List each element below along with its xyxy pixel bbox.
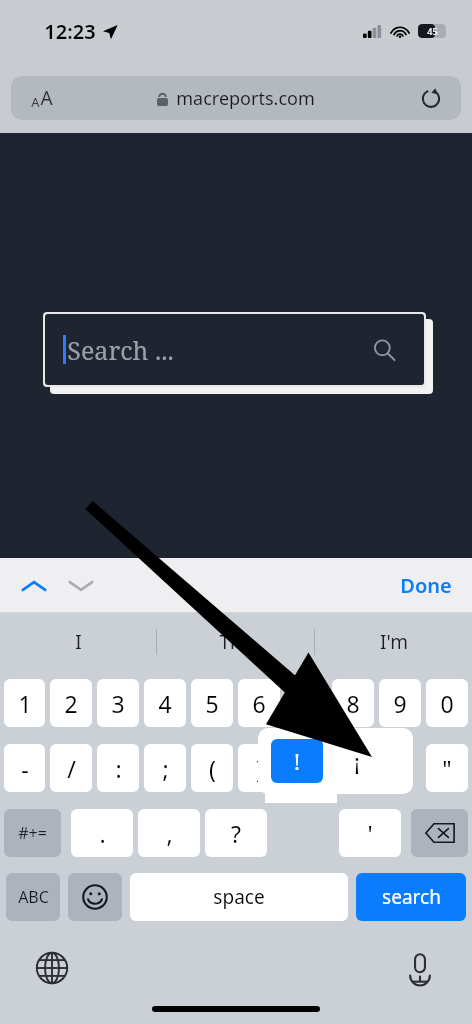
staticText: macreports.com — [176, 86, 315, 111]
staticText: ' — [367, 818, 373, 849]
button[interactable]: - — [4, 744, 45, 792]
button[interactable]: ( — [191, 744, 233, 792]
button[interactable]: ? — [205, 809, 267, 857]
button[interactable]: 6 — [238, 679, 280, 727]
button[interactable]: #+= — [4, 809, 61, 857]
button[interactable]: Delete — [411, 809, 468, 857]
button[interactable]: Done — [394, 566, 458, 605]
button[interactable]: ABC — [6, 873, 60, 921]
button[interactable]: Text size — [11, 76, 461, 120]
staticText: ! — [294, 746, 300, 776]
button[interactable]: The — [157, 613, 314, 671]
button[interactable]: 5 — [191, 679, 233, 727]
button[interactable]: Dictation — [401, 949, 439, 987]
staticText: - — [21, 753, 29, 784]
staticText: I — [75, 629, 82, 655]
staticText: 5 — [205, 688, 219, 719]
button[interactable]: ) — [238, 744, 280, 792]
staticText: 0 — [440, 688, 454, 719]
button[interactable]: Change keyboard language — [33, 949, 71, 987]
staticText: 8 — [346, 688, 360, 719]
button[interactable]: Reload — [419, 86, 443, 110]
button[interactable]: 0 — [426, 679, 468, 727]
staticText: " — [442, 753, 452, 784]
button[interactable]: ¡ — [331, 739, 383, 783]
staticText: 12:23 — [44, 18, 96, 45]
staticText: ; — [162, 753, 169, 784]
staticText: ABC — [18, 886, 49, 908]
button[interactable]: 1 — [4, 679, 45, 727]
staticText: ? — [231, 818, 241, 849]
button[interactable]: ; — [144, 744, 186, 792]
button[interactable]: Emoji — [68, 873, 122, 921]
button[interactable]: search — [356, 873, 466, 921]
staticText: A — [31, 93, 40, 111]
button[interactable]: I'm — [315, 613, 472, 671]
staticText: The — [219, 629, 253, 655]
staticText: . — [99, 818, 106, 849]
button[interactable]: / — [50, 744, 92, 792]
staticText: 6 — [252, 688, 266, 719]
staticText: / — [67, 753, 76, 784]
staticText: Done — [400, 572, 452, 599]
button[interactable]: ! — [271, 739, 323, 783]
staticText: : — [115, 753, 122, 784]
staticText: 4 — [158, 688, 172, 719]
staticText: , — [166, 818, 173, 849]
staticText: 9 — [393, 688, 407, 719]
button[interactable]: " — [426, 744, 468, 792]
button[interactable]: Search ... — [45, 314, 424, 385]
button[interactable]: : — [97, 744, 139, 792]
button[interactable]: 3 — [97, 679, 139, 727]
button[interactable]: Text size — [31, 85, 53, 111]
button[interactable]: 8 — [332, 679, 374, 727]
button[interactable]: Next field — [63, 568, 99, 604]
button[interactable]: 2 — [50, 679, 92, 727]
staticText: ( — [209, 753, 216, 784]
button[interactable]: space — [130, 873, 348, 921]
staticText: 2 — [64, 688, 78, 719]
button[interactable]: ' — [339, 809, 401, 857]
staticText: 1 — [18, 688, 32, 719]
staticText: ) — [256, 753, 263, 784]
staticText: Search ... — [67, 333, 174, 367]
staticText: ¡ — [354, 746, 360, 776]
button[interactable]: . — [71, 809, 133, 857]
button[interactable]: I — [0, 613, 156, 671]
staticText: #+= — [18, 822, 47, 844]
button[interactable]: 7 — [285, 679, 327, 727]
staticText: 3 — [111, 688, 125, 719]
staticText: 45 — [427, 25, 438, 37]
button[interactable]: , — [138, 809, 200, 857]
button[interactable]: 9 — [379, 679, 421, 727]
button[interactable]: 4 — [144, 679, 186, 727]
staticText: I'm — [380, 629, 408, 655]
button[interactable]: Previous field — [16, 568, 52, 604]
staticText: search — [382, 884, 441, 910]
staticText: A — [40, 85, 53, 111]
staticText: space — [213, 884, 265, 910]
